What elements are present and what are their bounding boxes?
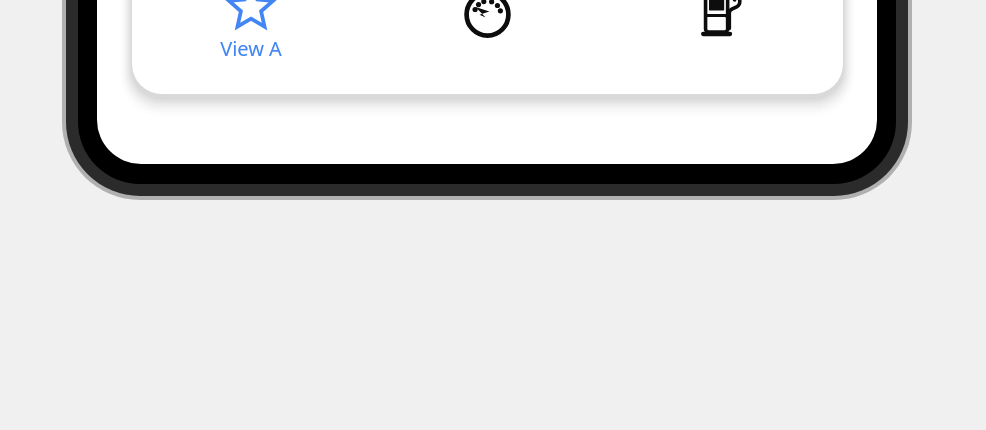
staticText: View A — [220, 35, 282, 62]
button[interactable]: Dashboard — [369, 0, 606, 94]
button[interactable]: View A — [132, 0, 369, 94]
button[interactable]: Fuel — [606, 0, 843, 94]
